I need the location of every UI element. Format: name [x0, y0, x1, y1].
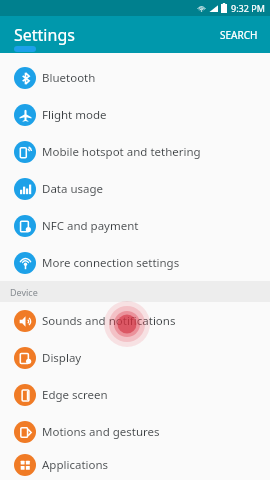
staticText: Data usage [42, 181, 104, 197]
button[interactable]: Display [0, 339, 270, 376]
staticText: Display [42, 350, 82, 366]
button[interactable]: Bluetooth [0, 59, 270, 96]
button[interactable]: Flight mode [0, 96, 270, 133]
staticText: Device [10, 286, 38, 298]
button[interactable]: Mobile hotspot and tethering [0, 133, 270, 170]
button[interactable]: NFC and payment [0, 207, 270, 244]
staticText: SEARCH [220, 28, 258, 42]
staticText: Mobile hotspot and tethering [42, 144, 201, 160]
staticText: Bluetooth [42, 70, 96, 86]
staticText: Motions and gestures [42, 424, 160, 440]
staticText: More connection settings [42, 255, 180, 271]
button[interactable]: More connection settings [0, 244, 270, 281]
staticText: Sounds and notifications [42, 313, 176, 329]
button[interactable]: Sounds and notifications [0, 302, 270, 339]
button[interactable]: Applications [0, 450, 270, 480]
staticText: NFC and payment [42, 218, 139, 234]
button[interactable]: SEARCH [208, 20, 270, 50]
staticText: 9:32 PM [231, 2, 265, 14]
button[interactable]: Motions and gestures [0, 413, 270, 450]
staticText: Edge screen [42, 387, 108, 403]
button[interactable]: Edge screen [0, 376, 270, 413]
staticText: Applications [42, 457, 109, 473]
button[interactable]: Data usage [0, 170, 270, 207]
staticText: Flight mode [42, 107, 107, 123]
staticText: Settings [14, 24, 75, 46]
